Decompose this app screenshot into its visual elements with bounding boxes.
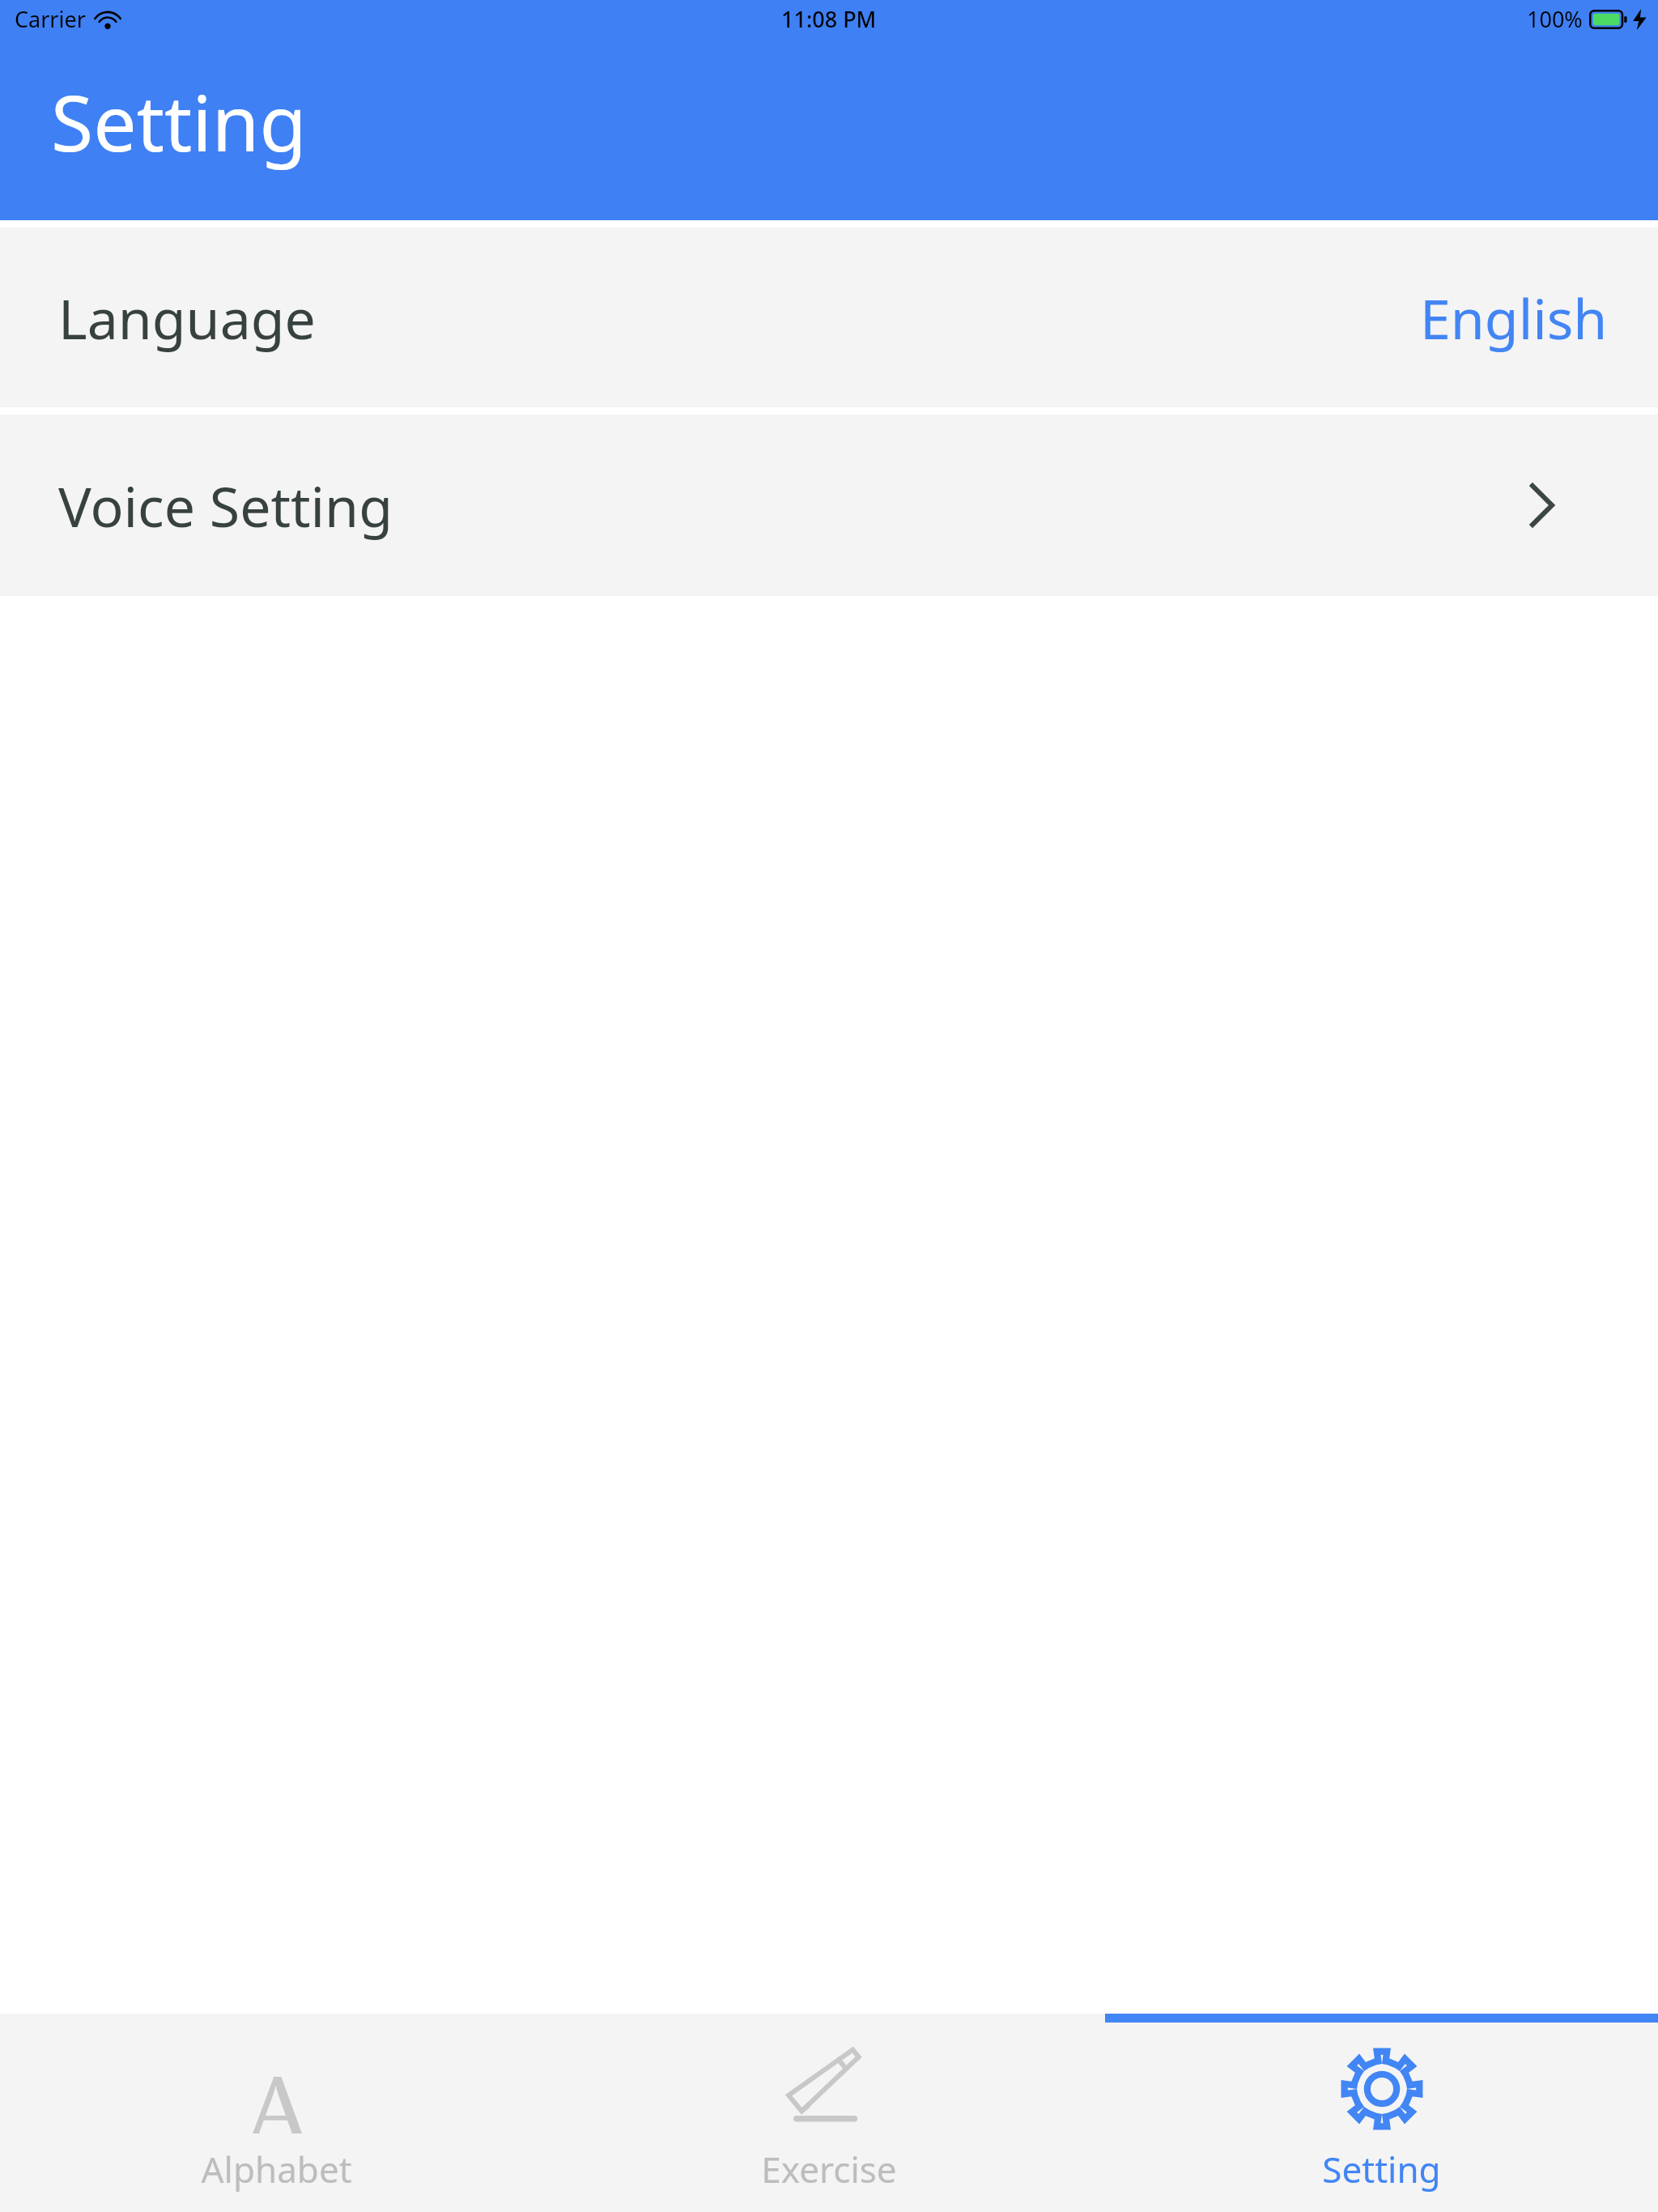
staticText: 100% xyxy=(1527,4,1583,34)
button[interactable]: Language xyxy=(0,228,1658,407)
staticText: 11:08 PM xyxy=(781,4,877,34)
button[interactable]: Voice Setting xyxy=(0,415,1658,596)
button[interactable]: Alphabet xyxy=(0,2014,552,2212)
staticText: Alphabet xyxy=(201,2145,352,2193)
staticText: Voice Setting xyxy=(58,468,393,543)
staticText: Setting xyxy=(1322,2145,1441,2193)
staticText: English xyxy=(1420,280,1608,355)
other: Exercise xyxy=(784,2044,874,2133)
button[interactable]: Exercise xyxy=(552,2014,1105,2212)
staticText: Setting xyxy=(51,69,307,173)
other: Setting xyxy=(1337,2044,1426,2133)
staticText: A xyxy=(245,2044,309,2133)
button[interactable]: Setting xyxy=(1105,2014,1658,2212)
staticText: Language xyxy=(58,280,316,355)
staticText: Exercise xyxy=(761,2145,897,2193)
other: Alphabet xyxy=(232,2044,321,2133)
staticText: Carrier xyxy=(15,4,86,34)
